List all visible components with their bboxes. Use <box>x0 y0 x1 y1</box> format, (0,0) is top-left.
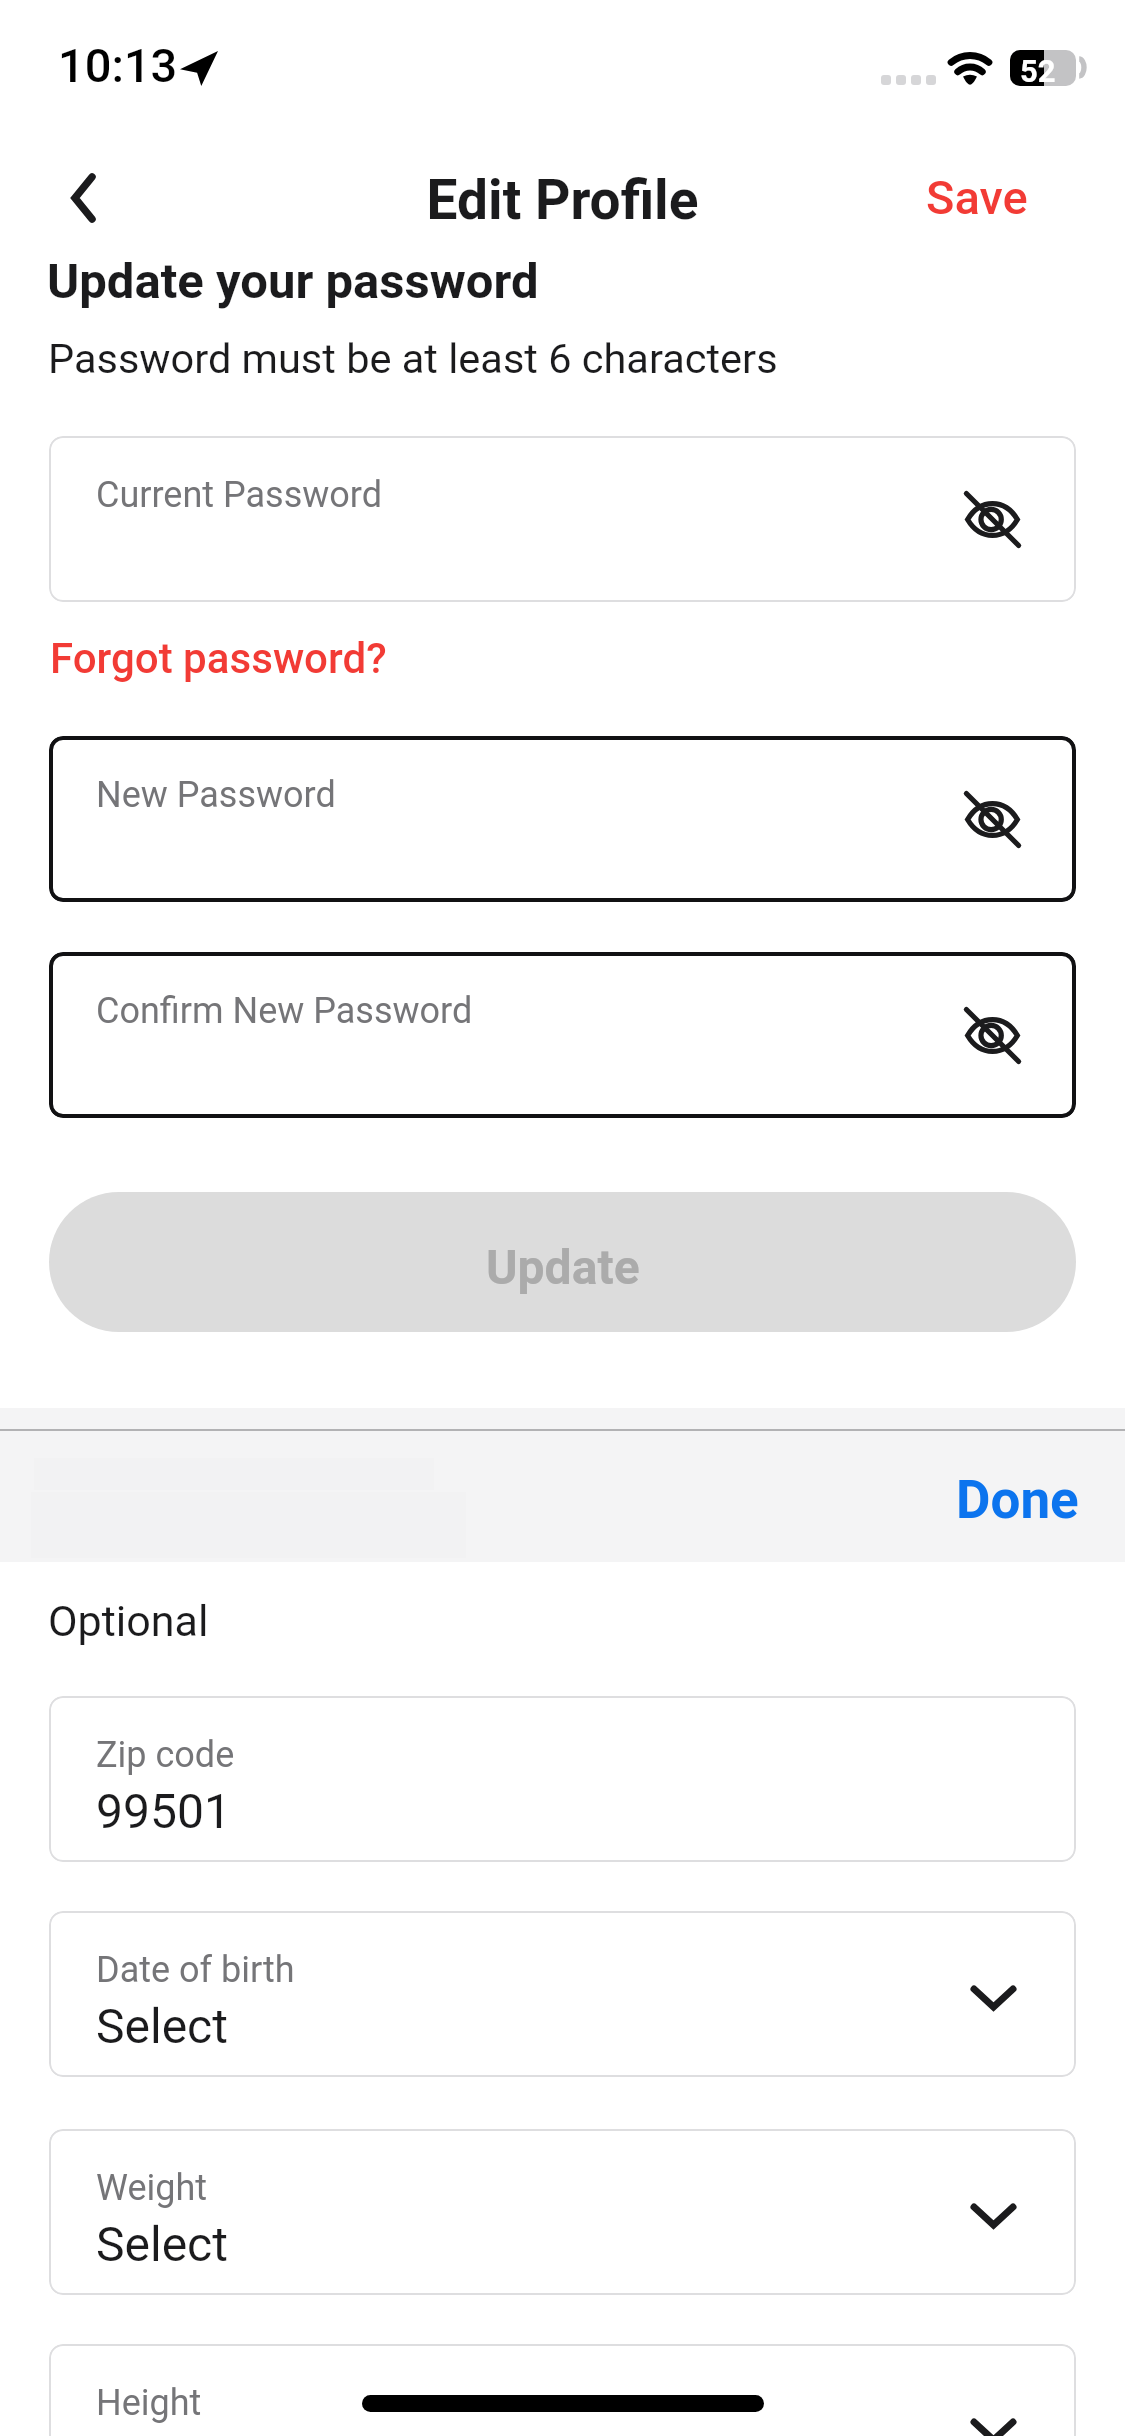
button[interactable]: Date of birth <box>49 1911 1076 2077</box>
staticText: Edit Profile <box>0 168 1125 232</box>
staticText: Save <box>926 170 1028 225</box>
button[interactable]: Forgot password? <box>28 620 409 697</box>
staticText: Done <box>956 1469 1079 1531</box>
staticText: New Password <box>96 774 336 816</box>
button[interactable]: Show password <box>933 976 1052 1095</box>
staticText: Update <box>486 1239 640 1295</box>
button[interactable]: Confirm New Password <box>49 952 1076 1118</box>
staticText: 10:13 <box>58 38 178 93</box>
button[interactable]: Save <box>896 152 1058 243</box>
staticText: Forgot password? <box>50 634 387 683</box>
button[interactable]: Height <box>49 2344 1076 2436</box>
staticText: Zip code <box>96 1734 235 1776</box>
staticText: Height <box>96 2382 202 2424</box>
button[interactable]: Back <box>23 145 143 255</box>
staticText: 99501 <box>96 1783 231 1839</box>
staticText: Optional <box>48 1596 209 1646</box>
button[interactable]: Weight <box>49 2129 1076 2295</box>
button[interactable]: Show password <box>933 760 1052 879</box>
staticText: 52 <box>1020 53 1056 89</box>
button[interactable]: Zip code <box>49 1696 1076 1862</box>
button[interactable]: Show password <box>933 460 1052 579</box>
staticText: Select <box>96 1998 228 2054</box>
button[interactable]: Current Password <box>49 436 1076 602</box>
staticText: Password must be at least 6 characters <box>48 334 778 383</box>
staticText: Current Password <box>96 474 383 516</box>
button[interactable]: New Password <box>49 736 1076 902</box>
staticText: Select <box>96 2216 228 2272</box>
button[interactable]: Done <box>910 1455 1125 1545</box>
button[interactable]: Update <box>49 1192 1076 1332</box>
staticText: Weight <box>96 2167 208 2209</box>
staticText: Date of birth <box>96 1949 295 1991</box>
staticText: Confirm New Password <box>96 990 473 1032</box>
staticText: Update your password <box>47 253 539 310</box>
